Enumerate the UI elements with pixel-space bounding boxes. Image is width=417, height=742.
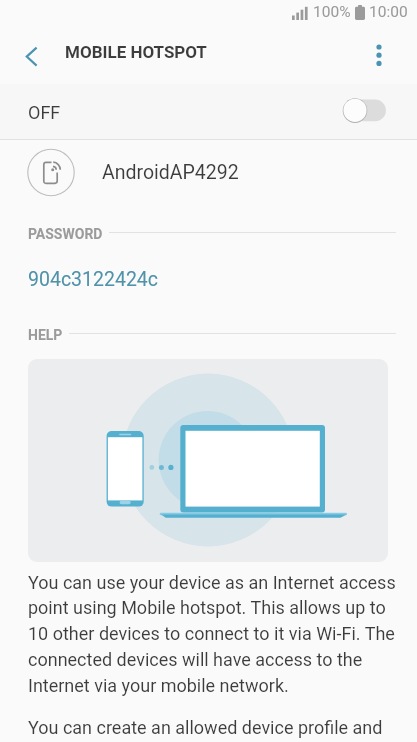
staticText: AndroidAP4292 bbox=[102, 161, 239, 184]
button[interactable]: AndroidAP4292 bbox=[0, 140, 417, 204]
staticText: 100% bbox=[313, 3, 351, 21]
staticText: You can use your device as an Internet a… bbox=[28, 572, 403, 697]
staticText: You can create an allowed device profile… bbox=[28, 717, 383, 738]
button[interactable]: Navigate up bbox=[15, 39, 49, 73]
button[interactable]: More options bbox=[363, 38, 395, 70]
staticText: OFF bbox=[28, 102, 61, 123]
staticText: 10:00 bbox=[369, 3, 408, 21]
staticText: PASSWORD bbox=[28, 226, 103, 242]
staticText: HELP bbox=[28, 327, 63, 343]
button[interactable]: OFF bbox=[0, 84, 417, 139]
staticText: 904c3122424c bbox=[28, 268, 159, 291]
staticText: MOBILE HOTSPOT bbox=[65, 42, 207, 62]
